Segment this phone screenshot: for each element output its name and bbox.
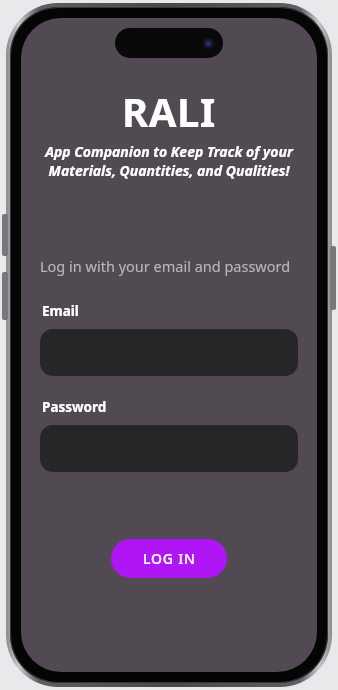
staticText: Email (42, 302, 79, 320)
staticText: Password (42, 398, 107, 416)
other: Volume down (2, 272, 8, 320)
button[interactable]: Password input (40, 425, 298, 472)
staticText: LOG IN (143, 549, 196, 568)
staticText: RALI (122, 84, 216, 138)
staticText: Log in with your email and password (40, 256, 291, 276)
staticText: App Companion to Keep Track of your Mate… (45, 142, 293, 180)
button[interactable]: LOG IN (111, 539, 227, 578)
button[interactable]: Email input (40, 329, 298, 376)
other: Power (330, 246, 336, 310)
other: Volume up (2, 214, 8, 256)
